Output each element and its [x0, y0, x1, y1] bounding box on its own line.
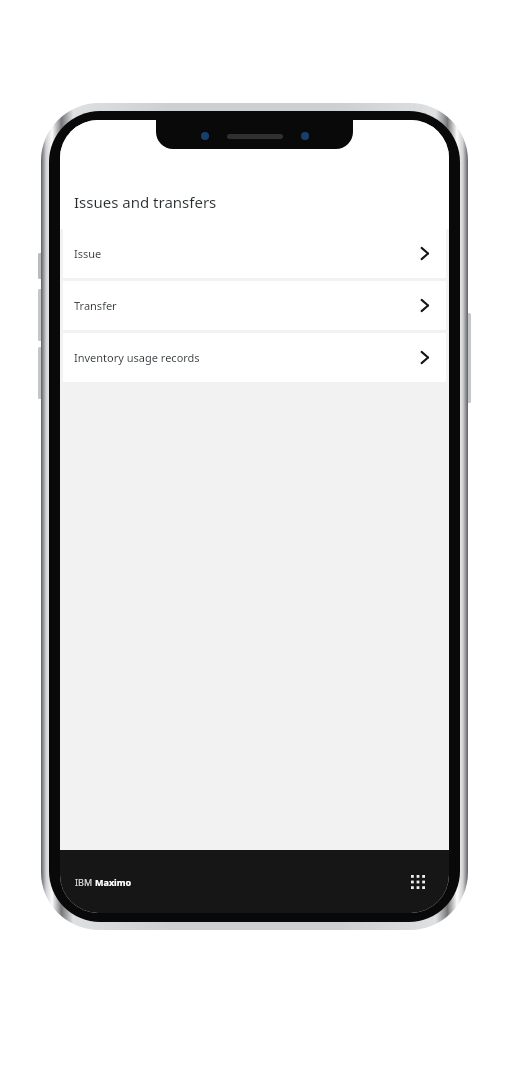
staticText: Transfer — [74, 298, 416, 313]
button[interactable]: Issue — [63, 229, 446, 278]
staticText: Maximo — [95, 876, 132, 888]
staticText: Inventory usage records — [74, 350, 416, 365]
button[interactable]: App menu — [402, 866, 434, 898]
staticText: Issues and transfers — [74, 192, 217, 212]
button[interactable]: Inventory usage records — [63, 333, 446, 382]
staticText: IBM — [75, 876, 95, 888]
button[interactable]: Transfer — [63, 281, 446, 330]
staticText: Issue — [74, 246, 416, 261]
button[interactable]: IBM — [75, 876, 402, 888]
